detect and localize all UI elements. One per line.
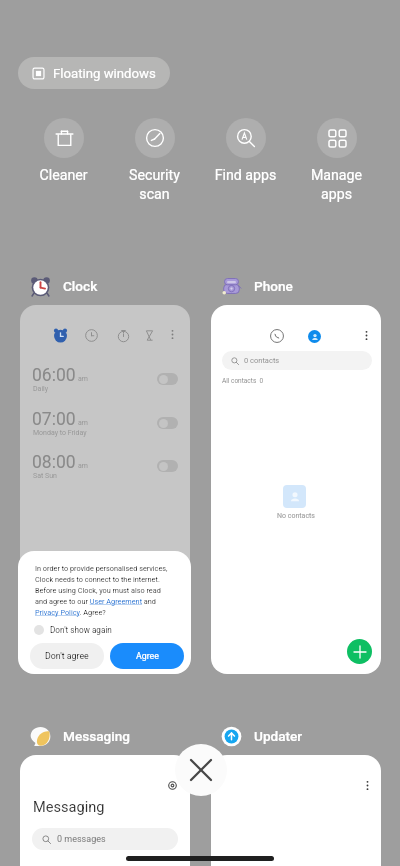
staticText: am <box>78 419 88 427</box>
button[interactable]: Add contact <box>347 639 372 664</box>
staticText: Don't show again <box>50 625 112 635</box>
button[interactable]: tab <box>115 327 131 343</box>
button[interactable]: 07:00 <box>20 409 190 445</box>
staticText: Messaging <box>33 798 105 815</box>
staticText: Security scan <box>110 167 199 203</box>
button[interactable]: 08:00 <box>20 452 190 488</box>
button[interactable]: Security scan <box>110 118 199 203</box>
button[interactable]: Manage apps <box>292 118 381 203</box>
button[interactable]: Agree <box>110 643 184 669</box>
staticText: Updater <box>254 728 303 744</box>
staticText: am <box>78 462 88 470</box>
staticText: All contacts 0 <box>222 377 264 385</box>
staticText: am <box>78 375 88 383</box>
button[interactable]: 0 contacts <box>222 351 372 370</box>
staticText: Daily <box>33 385 49 393</box>
button[interactable]: Alarm toggle <box>157 460 178 472</box>
staticText: Floating windows <box>53 66 156 81</box>
button[interactable]: More options <box>359 328 374 343</box>
staticText: Sat Sun <box>33 472 57 480</box>
button[interactable]: Recents <box>269 328 285 344</box>
staticText: Cleaner <box>19 167 108 184</box>
button[interactable]: Alarm toggle <box>157 417 178 429</box>
button[interactable]: Recents <box>211 305 381 674</box>
staticText: Don't agree <box>45 651 89 661</box>
button[interactable]: Don't show again <box>34 625 112 635</box>
staticText: Manage apps <box>292 167 381 203</box>
staticText: 06:00 <box>32 365 76 386</box>
staticText: In order to provide personalised service… <box>35 564 172 617</box>
button[interactable]: tab <box>83 327 99 343</box>
button[interactable]: Find apps <box>201 118 290 184</box>
staticText: Clock <box>63 278 98 294</box>
staticText: No contacts <box>256 512 336 520</box>
staticText: 0 contacts <box>244 356 280 365</box>
button[interactable]: More options <box>165 327 180 342</box>
button[interactable]: Messaging <box>20 755 190 866</box>
button[interactable]: Floating windows <box>18 57 170 89</box>
staticText: Agree <box>136 651 159 661</box>
staticText: Phone <box>254 278 293 294</box>
button[interactable]: Don't agree <box>30 643 104 669</box>
staticText: 0 messages <box>57 834 106 845</box>
button[interactable]: tab <box>141 327 157 343</box>
staticText: 07:00 <box>32 409 76 430</box>
staticText: Monday to Friday <box>33 429 87 437</box>
button[interactable]: Cleaner <box>19 118 108 184</box>
staticText: 08:00 <box>32 452 76 473</box>
button[interactable]: Contacts <box>306 328 322 344</box>
button[interactable] <box>211 755 381 866</box>
button[interactable]: Close all <box>175 744 227 796</box>
staticText: Messaging <box>63 728 130 744</box>
button[interactable]: 06:00 <box>20 365 190 401</box>
button[interactable]: Alarm toggle <box>157 373 178 385</box>
staticText: Find apps <box>201 167 290 184</box>
button[interactable]: tab <box>20 305 190 674</box>
button[interactable]: tab <box>52 327 68 343</box>
